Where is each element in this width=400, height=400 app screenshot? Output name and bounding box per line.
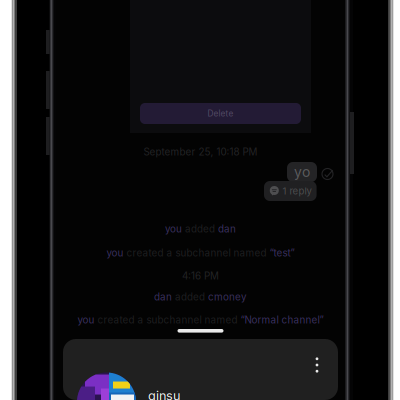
staticText: you xyxy=(165,223,182,235)
staticText: added xyxy=(182,223,218,235)
staticText: added xyxy=(172,291,208,303)
staticText: “Normal channel” xyxy=(240,314,323,326)
staticText: “test” xyxy=(269,247,294,259)
staticText: cmoney xyxy=(208,291,247,303)
staticText: you xyxy=(106,247,123,259)
staticText: 1 reply xyxy=(283,185,312,197)
staticText: created a subchannel named xyxy=(123,247,269,259)
staticText: Delete xyxy=(207,108,233,118)
button[interactable]: Delete xyxy=(140,103,301,124)
staticText: you xyxy=(77,314,94,326)
staticText: ginsu xyxy=(148,388,180,400)
staticText: dan xyxy=(218,223,236,235)
staticText: created a subchannel named xyxy=(94,314,240,326)
staticText: yo xyxy=(294,163,310,180)
staticText: 4:16 PM xyxy=(182,270,219,282)
staticText: September 25, 10:18 PM xyxy=(143,146,257,158)
button[interactable]: 1 reply xyxy=(264,181,317,201)
button[interactable]: More options xyxy=(305,352,329,378)
button[interactable]: yo xyxy=(287,162,317,182)
staticText: dan xyxy=(154,291,172,303)
